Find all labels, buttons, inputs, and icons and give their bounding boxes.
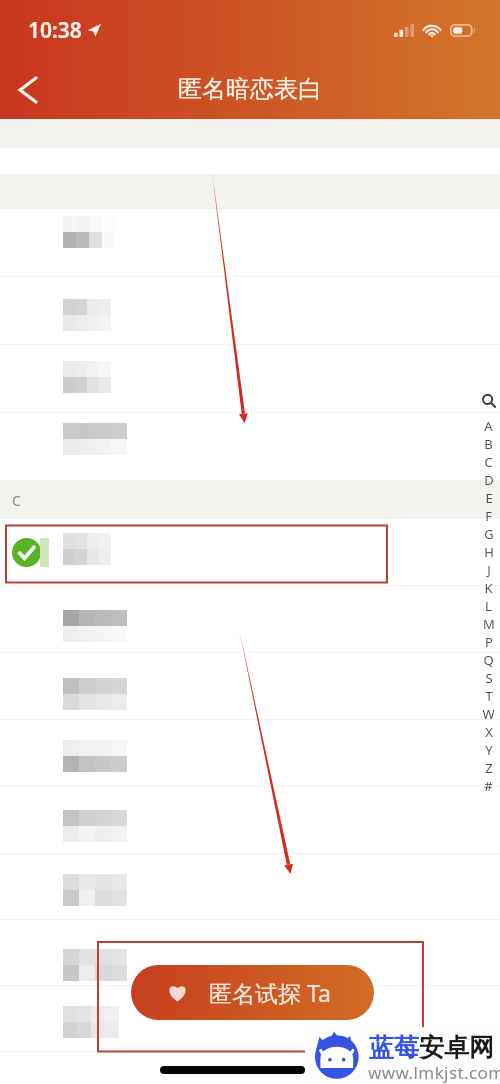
staticText: G [484,525,494,543]
button[interactable]: D [477,471,500,489]
button[interactable]: Y [477,741,500,759]
button[interactable] [0,854,500,920]
staticText: T [485,687,493,705]
button[interactable]: 匿名试探 Ta [131,965,374,1020]
button[interactable] [0,519,500,586]
staticText: 10:38 [28,16,82,45]
button[interactable]: F [477,507,500,525]
staticText: C [12,491,21,510]
button[interactable]: X [477,723,500,741]
button[interactable]: T [477,687,500,705]
button[interactable] [0,586,500,653]
staticText: C [484,453,493,471]
button[interactable]: L [477,597,500,615]
staticText: F [485,507,492,525]
staticText: 匿名暗恋表白 [178,74,322,104]
button[interactable]: C [477,453,500,471]
button[interactable]: P [477,633,500,651]
button[interactable]: W [477,705,500,723]
button[interactable]: J [477,561,500,579]
staticText: M [483,615,495,633]
staticText: B [484,435,493,453]
button[interactable]: K [477,579,500,597]
staticText: 安卓网 [419,1032,494,1063]
button[interactable] [0,413,500,481]
staticText: 匿名试探 Ta [209,977,331,1008]
button[interactable]: H [477,543,500,561]
staticText: www.lmkjst.com [368,1061,500,1084]
staticText: L [485,597,492,615]
button[interactable]: Z [477,759,500,777]
button[interactable]: Q [477,651,500,669]
staticText: H [484,543,494,561]
staticText: P [485,633,493,651]
button[interactable] [0,209,500,277]
staticText: E [485,489,493,507]
button[interactable]: S [477,669,500,687]
button[interactable]: Search [477,389,500,412]
staticText: J [487,561,491,579]
button[interactable]: A [477,417,500,435]
button[interactable] [0,986,500,1052]
button[interactable]: B [477,435,500,453]
staticText: D [484,471,494,489]
staticText: K [484,579,493,597]
button[interactable]: E [477,489,500,507]
button[interactable] [0,345,500,413]
button[interactable]: G [477,525,500,543]
button[interactable] [0,277,500,345]
button[interactable] [0,720,500,787]
staticText: S [485,669,493,687]
button[interactable] [0,920,500,986]
staticText: X [485,723,493,741]
staticText: Q [483,651,494,669]
button[interactable]: M [477,615,500,633]
staticText: # [484,777,493,795]
staticText: 蓝莓 [369,1032,419,1063]
button[interactable] [0,787,500,854]
staticText: A [484,417,493,435]
button[interactable]: # [477,777,500,795]
staticText: W [482,705,495,723]
staticText: Z [485,759,493,777]
button[interactable]: Back [0,64,56,116]
button[interactable] [0,653,500,720]
staticText: Y [485,741,493,759]
